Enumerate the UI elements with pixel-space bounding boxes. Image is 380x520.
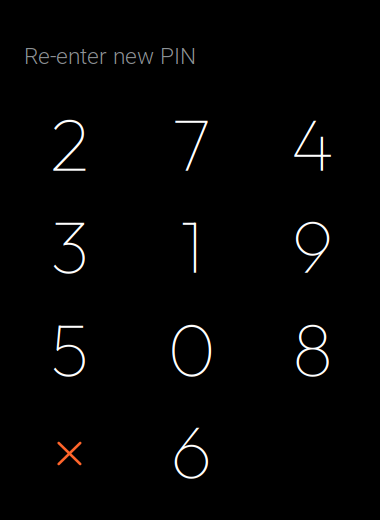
staticText: 8: [292, 302, 333, 395]
staticText: 0: [167, 302, 215, 395]
button[interactable]: 2: [11, 93, 129, 193]
staticText: 9: [292, 199, 334, 292]
staticText: 4: [291, 97, 335, 190]
button[interactable]: 1: [132, 195, 250, 295]
button[interactable]: 5: [11, 298, 129, 398]
staticText: 3: [50, 199, 89, 292]
button[interactable]: 0: [132, 298, 250, 398]
button[interactable]: Delete: [11, 400, 129, 500]
button[interactable]: 9: [254, 195, 372, 295]
button[interactable]: 6: [132, 400, 250, 500]
staticText: 2: [50, 97, 90, 190]
button[interactable]: 8: [254, 298, 372, 398]
staticText: 1: [179, 199, 203, 292]
button[interactable]: 4: [254, 93, 372, 193]
button[interactable]: 3: [11, 195, 129, 295]
button[interactable]: 7: [132, 93, 250, 193]
staticText: 6: [170, 404, 212, 497]
staticText: 7: [172, 97, 211, 190]
staticText: 5: [50, 302, 89, 395]
staticText: Re-enter new PIN: [24, 43, 196, 70]
